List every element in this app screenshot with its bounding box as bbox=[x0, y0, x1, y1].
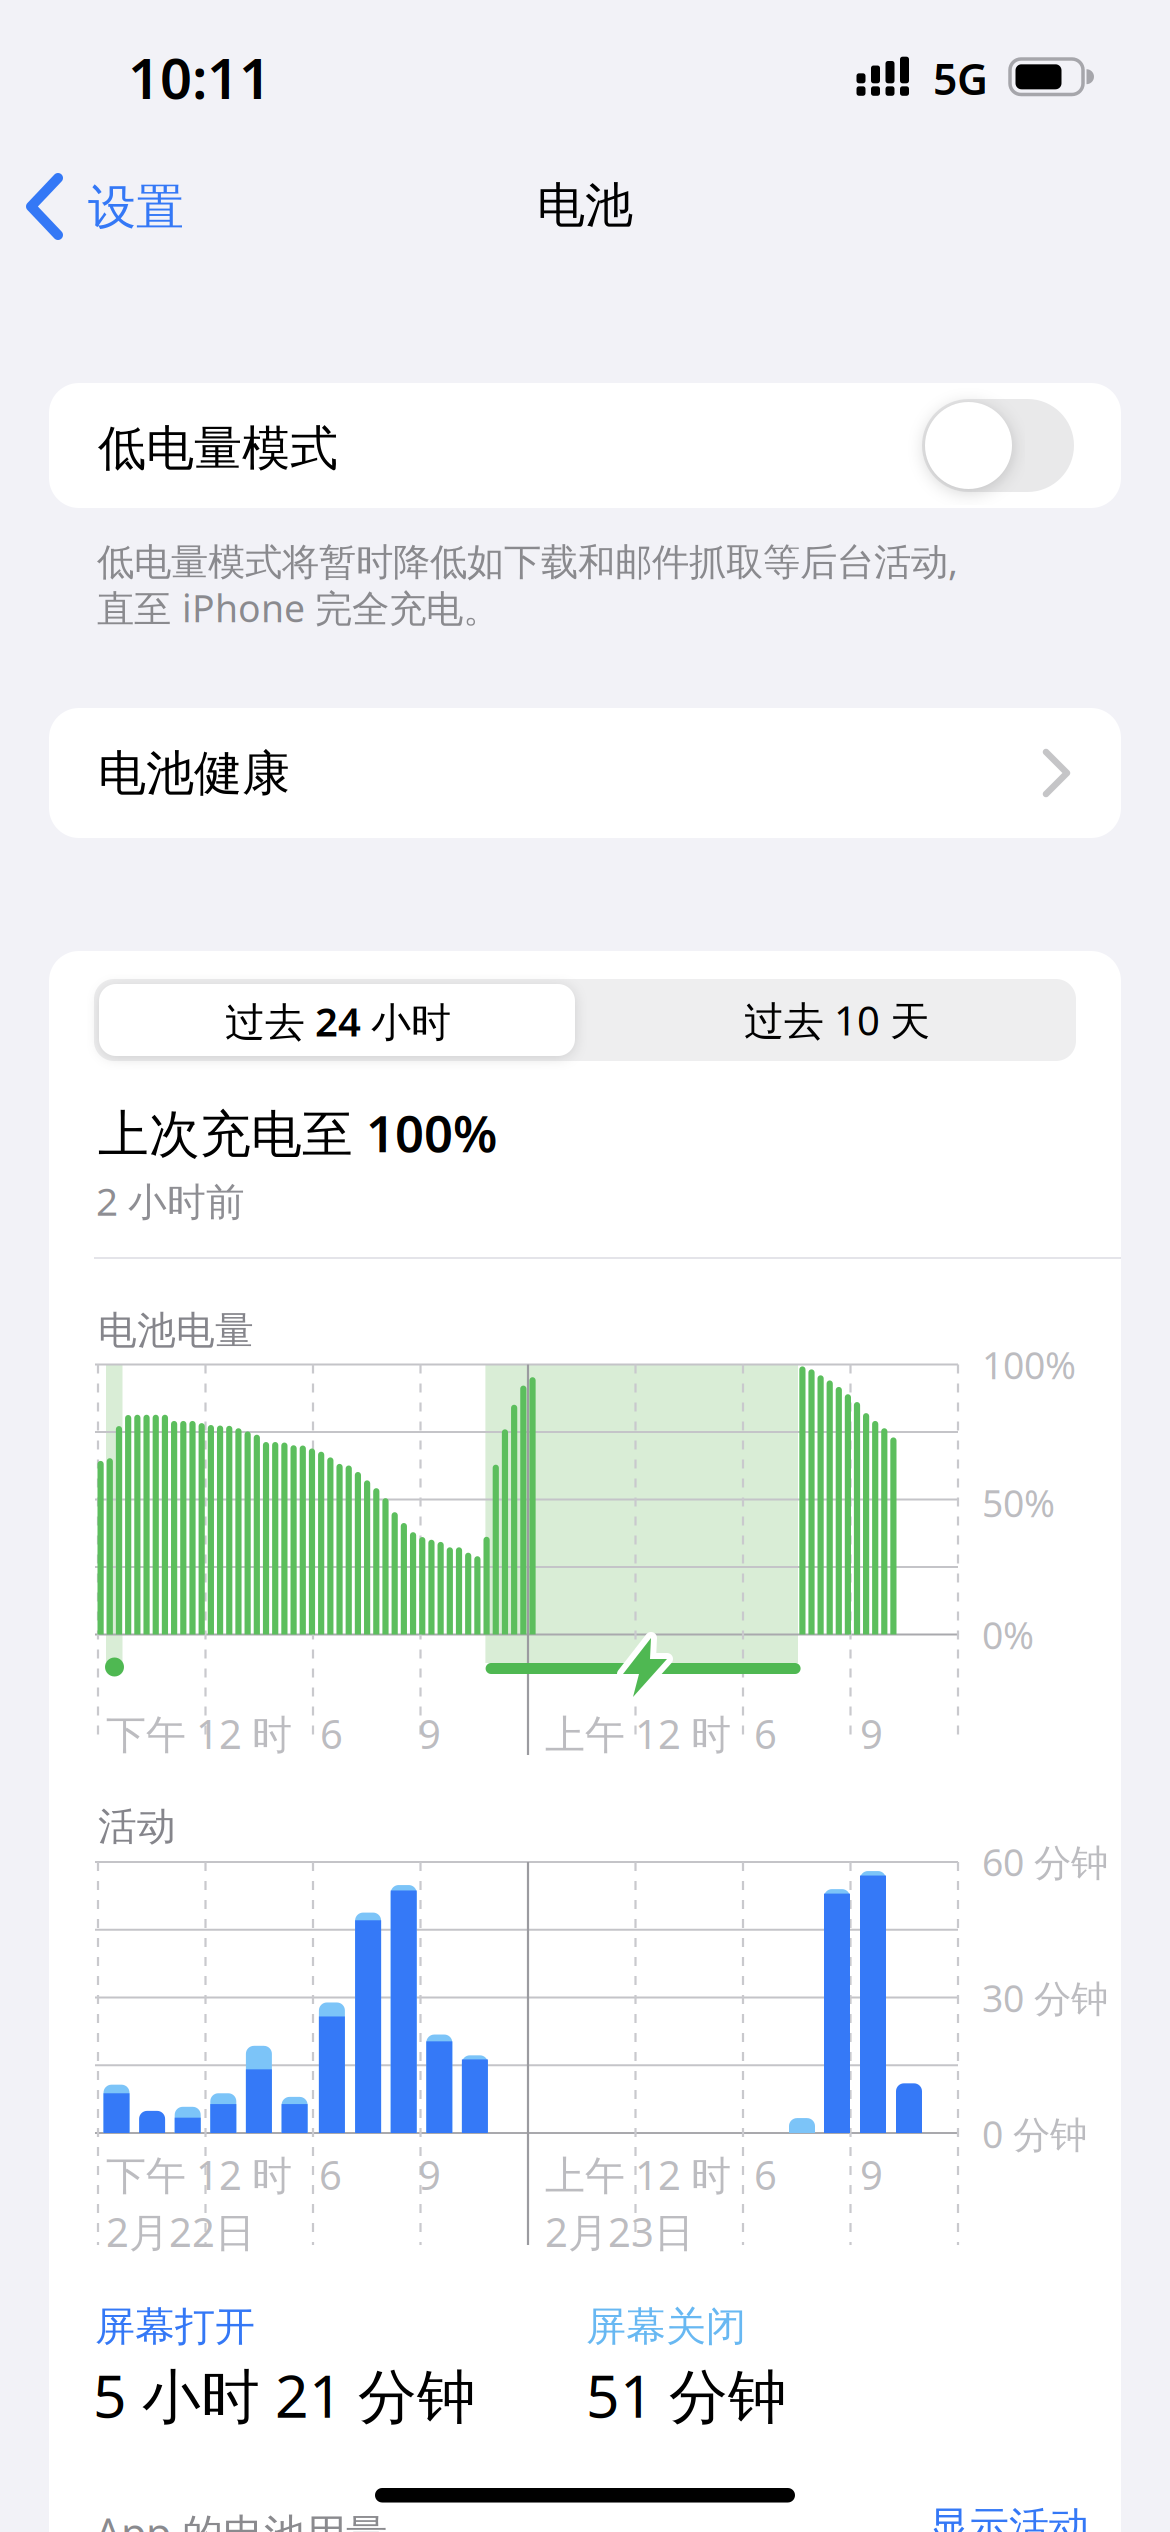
staticText: 屏幕打开 bbox=[95, 2302, 255, 2351]
staticText: 上次充电至 100% bbox=[98, 1099, 497, 1166]
staticText: 6 bbox=[320, 1707, 343, 1760]
staticText: 过去 10 天 bbox=[744, 993, 930, 1046]
staticText: 显示活动 bbox=[929, 2502, 1089, 2532]
staticText: 6 bbox=[319, 2148, 342, 2201]
button[interactable]: 显示活动 bbox=[929, 2502, 1089, 2532]
staticText: 设置 bbox=[88, 178, 184, 237]
staticText: 屏幕关闭 bbox=[586, 2302, 746, 2351]
staticText: 6 bbox=[754, 2148, 777, 2201]
staticText: 100% bbox=[982, 1340, 1076, 1390]
staticText: 5 小时 21 分钟 bbox=[93, 2356, 476, 2434]
staticText: 电池健康 bbox=[98, 744, 290, 803]
staticText: 9 bbox=[860, 1707, 883, 1760]
staticText: 2月23日 bbox=[545, 2205, 694, 2258]
staticText: 电池电量 bbox=[98, 1307, 254, 1354]
staticText: 6 bbox=[754, 1707, 777, 1760]
button[interactable]: 过去 24 小时 bbox=[99, 984, 575, 1056]
staticText: 2月22日 bbox=[106, 2205, 255, 2258]
staticText: 低电量模式将暂时降低如下载和邮件抓取等后台活动, bbox=[97, 536, 958, 586]
staticText: 9 bbox=[418, 1707, 441, 1760]
staticText: 0 分钟 bbox=[982, 2109, 1087, 2159]
staticText: 电池 bbox=[537, 176, 633, 235]
staticText: 50% bbox=[982, 1478, 1055, 1528]
button[interactable]: 电池健康 bbox=[49, 708, 1121, 838]
staticText: 低电量模式 bbox=[98, 419, 338, 478]
staticText: 10:11 bbox=[128, 40, 271, 114]
staticText: 直至 iPhone 完全充电。 bbox=[97, 583, 500, 633]
staticText: 60 分钟 bbox=[982, 1837, 1108, 1887]
staticText: 下午 12 时 bbox=[106, 2148, 292, 2201]
staticText: App 的电池用量 bbox=[95, 2505, 387, 2532]
staticText: 过去 24 小时 bbox=[225, 994, 451, 1047]
staticText: 51 分钟 bbox=[586, 2356, 787, 2434]
staticText: 5G bbox=[933, 50, 988, 107]
staticText: 9 bbox=[860, 2148, 883, 2201]
staticText: 2 小时前 bbox=[96, 1175, 245, 1226]
staticText: 9 bbox=[418, 2148, 441, 2201]
button[interactable]: 低电量模式 bbox=[922, 399, 1074, 492]
staticText: 下午 12 时 bbox=[106, 1707, 292, 1760]
button[interactable]: 过去 10 天 bbox=[612, 983, 1062, 1057]
staticText: 活动 bbox=[98, 1803, 176, 1850]
staticText: 上午 12 时 bbox=[545, 1707, 731, 1760]
staticText: 上午 12 时 bbox=[545, 2148, 731, 2201]
staticText: 30 分钟 bbox=[982, 1973, 1108, 2023]
staticText: 0% bbox=[982, 1610, 1034, 1660]
button[interactable]: 返回设置 bbox=[0, 0, 210, 110]
